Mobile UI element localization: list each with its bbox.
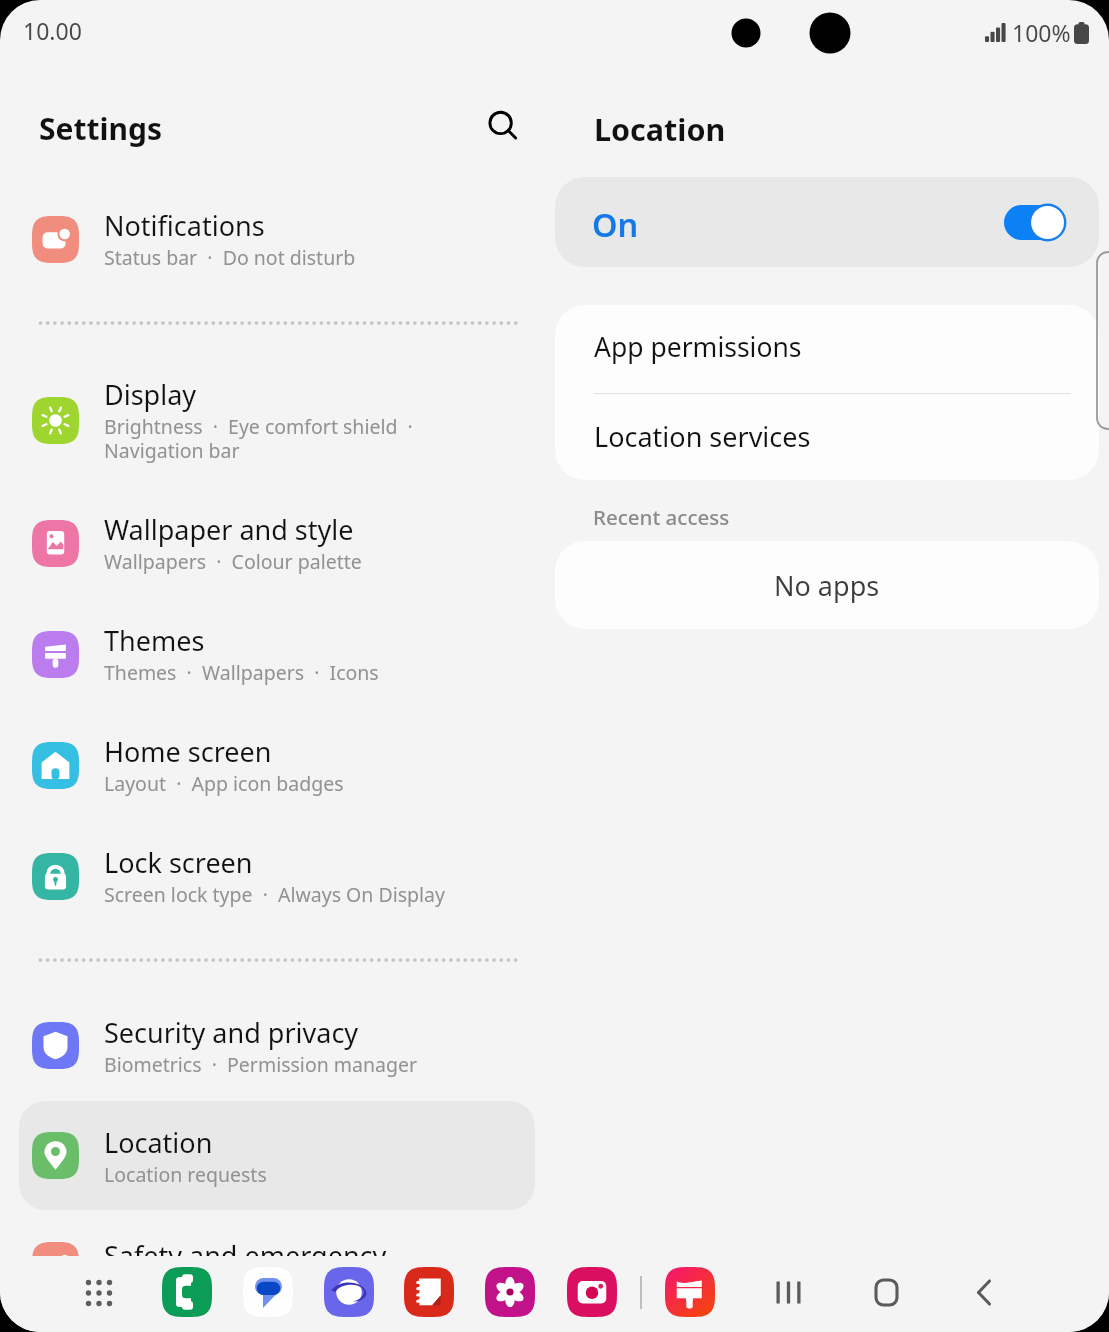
staticText: Home screen bbox=[104, 733, 272, 770]
staticText: Location bbox=[594, 108, 726, 150]
button[interactable]: Back bbox=[957, 1265, 1011, 1319]
button[interactable]: Themes bbox=[32, 631, 79, 678]
staticText: Settings bbox=[39, 108, 162, 149]
staticText: Biometrics · Permission manager bbox=[104, 1051, 418, 1078]
staticText: Recent access bbox=[593, 503, 730, 531]
button[interactable]: Apps bbox=[75, 1269, 123, 1317]
button[interactable]: Recents bbox=[761, 1265, 815, 1319]
staticText: Safety and emergency bbox=[104, 1237, 387, 1274]
button[interactable]: App permissions bbox=[555, 305, 1099, 393]
staticText: Screen lock type · Always On Display bbox=[104, 881, 445, 908]
staticText: On bbox=[592, 202, 639, 246]
staticText: Location services bbox=[594, 418, 811, 455]
button[interactable]: Home bbox=[859, 1265, 913, 1319]
button[interactable]: Home screen bbox=[32, 742, 79, 789]
button[interactable]: Notes bbox=[404, 1267, 454, 1317]
button[interactable]: Internet bbox=[324, 1267, 374, 1317]
staticText: Brightness · Eye comfort shield · Naviga… bbox=[104, 413, 413, 464]
staticText: Location bbox=[104, 1124, 213, 1161]
staticText: 10.00 bbox=[23, 15, 82, 46]
staticText: Wallpapers · Colour palette bbox=[104, 548, 362, 575]
button[interactable]: Phone bbox=[162, 1267, 212, 1317]
staticText: Security and privacy bbox=[104, 1014, 359, 1051]
button[interactable]: Display bbox=[32, 397, 79, 444]
staticText: 100% bbox=[1012, 17, 1071, 48]
button[interactable]: Themes bbox=[665, 1267, 715, 1317]
button[interactable]: Search bbox=[479, 102, 527, 150]
staticText: Themes bbox=[104, 622, 205, 659]
staticText: Status bar · Do not disturb bbox=[104, 244, 356, 271]
staticText: Location requests bbox=[104, 1161, 267, 1188]
staticText: Display bbox=[104, 376, 197, 413]
staticText: Layout · App icon badges bbox=[104, 770, 344, 797]
button[interactable]: Camera bbox=[567, 1267, 617, 1317]
staticText: Notifications bbox=[104, 207, 265, 244]
button[interactable]: Location services bbox=[555, 394, 1099, 480]
button[interactable]: Location bbox=[32, 1132, 79, 1179]
button[interactable]: Lock screen bbox=[32, 853, 79, 900]
button[interactable]: On bbox=[555, 177, 1099, 267]
staticText: App permissions bbox=[594, 329, 802, 365]
button[interactable]: Wallpaper and style bbox=[32, 520, 79, 567]
button[interactable]: Notifications bbox=[32, 216, 79, 263]
staticText: No apps bbox=[774, 567, 880, 604]
button[interactable]: Messages bbox=[243, 1267, 293, 1317]
button[interactable]: No apps bbox=[555, 541, 1099, 629]
staticText: Wallpaper and style bbox=[104, 511, 354, 548]
staticText: Themes · Wallpapers · Icons bbox=[104, 659, 379, 686]
button[interactable]: Gallery bbox=[485, 1267, 535, 1317]
button[interactable] bbox=[19, 1101, 535, 1210]
button[interactable]: Safety and emergency bbox=[32, 1242, 79, 1289]
button[interactable]: Security and privacy bbox=[32, 1022, 79, 1069]
staticText: Lock screen bbox=[104, 844, 253, 881]
